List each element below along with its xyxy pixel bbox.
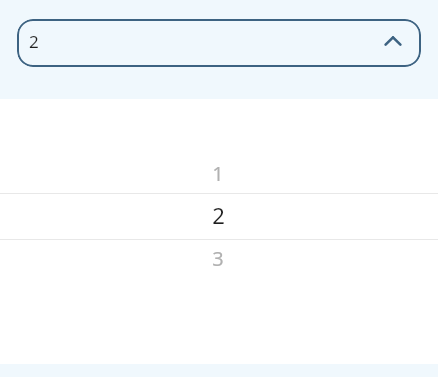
- staticText: 3: [212, 245, 224, 272]
- staticText: 1: [212, 160, 224, 187]
- staticText: 2: [29, 30, 39, 53]
- button[interactable]: Collapse dropdown: [373, 21, 413, 61]
- button[interactable]: 2: [17, 19, 421, 67]
- staticText: 2: [212, 200, 225, 230]
- button[interactable]: 3: [0, 237, 438, 279]
- button[interactable]: 2: [0, 192, 438, 237]
- button[interactable]: 1: [0, 152, 438, 194]
